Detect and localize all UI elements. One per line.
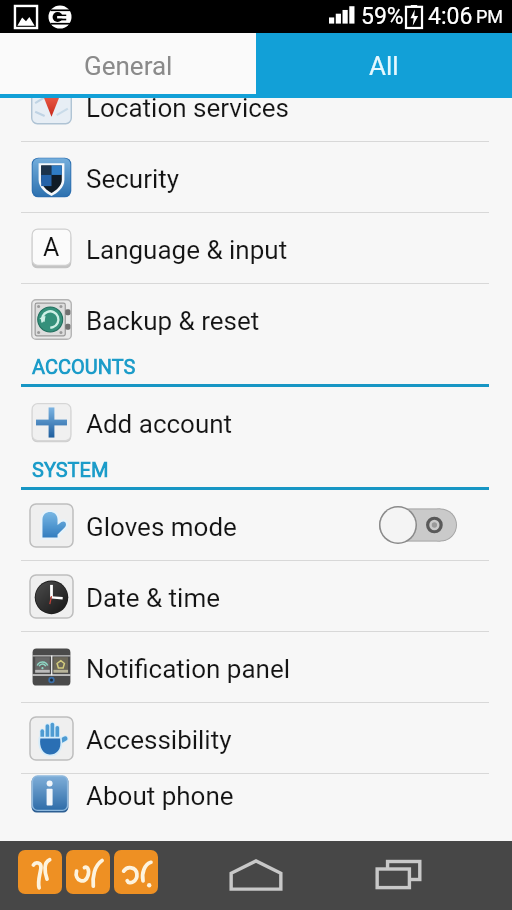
button[interactable]: Date & time — [0, 561, 512, 631]
staticText: Language & input — [86, 235, 288, 265]
staticText: Location services — [86, 98, 290, 123]
button[interactable]: Gloves mode — [0, 490, 512, 560]
staticText: All — [369, 51, 399, 81]
button[interactable]: Location services — [0, 98, 512, 141]
staticText: ACCOUNTS — [32, 355, 136, 378]
staticText: 59% — [361, 3, 404, 30]
button[interactable]: About phone — [0, 774, 512, 814]
staticText: SYSTEM — [32, 458, 109, 481]
button[interactable]: Security — [0, 142, 512, 212]
staticText: Date & time — [86, 583, 220, 613]
button[interactable]: A — [0, 213, 512, 283]
button[interactable]: General — [0, 33, 256, 94]
button[interactable]: App shortcut — [18, 850, 62, 894]
staticText: Add account — [86, 409, 233, 439]
staticText: Accessibility — [86, 725, 232, 755]
staticText: PM — [476, 6, 504, 27]
button[interactable]: Notification panel — [0, 632, 512, 702]
staticText: Gloves mode — [86, 512, 237, 542]
button[interactable]: Recent apps — [365, 844, 433, 906]
button[interactable]: App shortcut — [66, 850, 110, 894]
button[interactable]: Accessibility — [0, 703, 512, 773]
staticText: General — [84, 51, 173, 81]
staticText: About phone — [86, 781, 234, 811]
staticText: Backup & reset — [86, 306, 260, 336]
staticText: A — [43, 233, 60, 262]
button[interactable]: App shortcut — [114, 850, 158, 894]
button[interactable]: Add account — [0, 387, 512, 457]
staticText: Notification panel — [86, 654, 291, 684]
button[interactable]: All — [256, 33, 512, 94]
staticText: Security — [86, 164, 180, 194]
button[interactable]: Backup & reset — [0, 284, 512, 354]
button[interactable]: Home — [222, 844, 290, 906]
staticText: 4:06 — [428, 3, 473, 30]
